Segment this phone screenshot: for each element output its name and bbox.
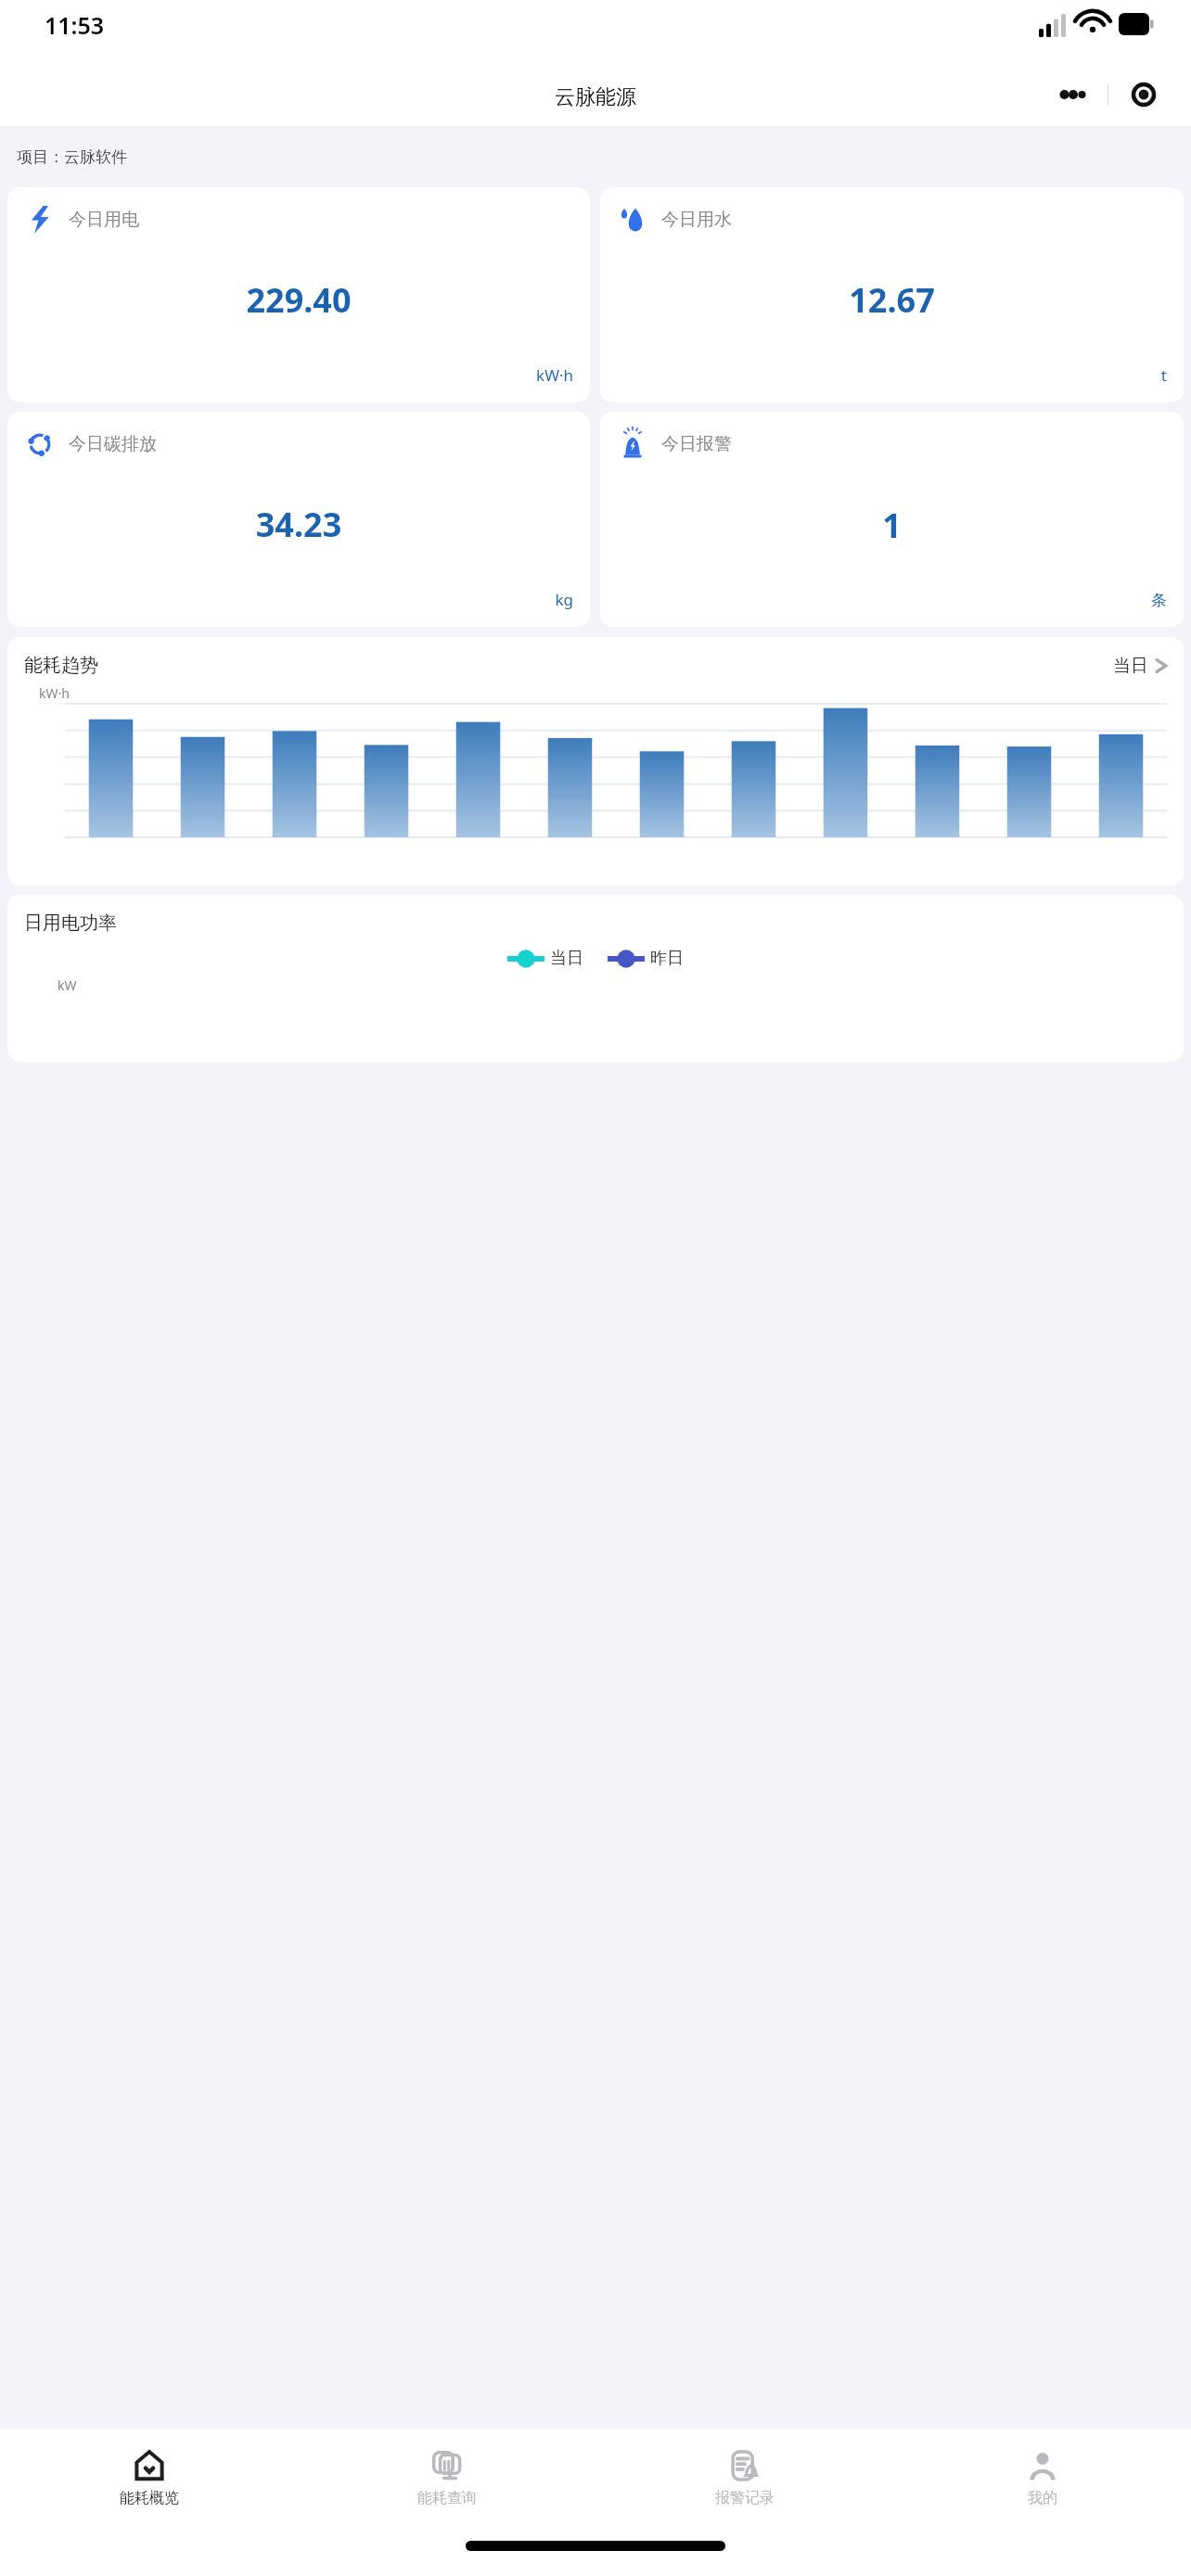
button[interactable]: 能耗查询 bbox=[298, 2429, 595, 2526]
staticText: 项目：云脉软件 bbox=[17, 147, 127, 167]
staticText: 1 bbox=[617, 503, 1167, 548]
staticText: 我的 bbox=[1028, 2489, 1057, 2507]
staticText: kW bbox=[58, 976, 77, 994]
staticText: 当日 bbox=[550, 948, 583, 969]
button[interactable]: Close bbox=[1108, 73, 1178, 116]
staticText: 12.67 bbox=[617, 277, 1167, 323]
staticText: 229.40 bbox=[24, 277, 573, 323]
button[interactable]: 我的 bbox=[893, 2429, 1191, 2526]
button[interactable]: More bbox=[1039, 73, 1108, 116]
staticText: 日用电功率 bbox=[24, 912, 117, 935]
staticText: t bbox=[617, 364, 1167, 386]
button[interactable]: 能耗趋势 bbox=[7, 637, 1184, 886]
button[interactable]: 今日用电 bbox=[7, 187, 590, 402]
button[interactable]: 当日 bbox=[1113, 655, 1167, 677]
staticText: 今日报警 bbox=[661, 433, 732, 455]
staticText: 能耗趋势 bbox=[24, 654, 98, 677]
button[interactable]: 今日报警 bbox=[600, 412, 1184, 627]
button[interactable]: 报警记录 bbox=[595, 2429, 893, 2526]
staticText: 报警记录 bbox=[715, 2489, 775, 2507]
button[interactable]: 能耗概览 bbox=[0, 2429, 298, 2526]
staticText: 当日 bbox=[1113, 655, 1148, 677]
button[interactable]: 日用电功率 bbox=[7, 895, 1184, 1062]
staticText: 今日碳排放 bbox=[69, 433, 157, 455]
staticText: 11:53 bbox=[45, 9, 105, 41]
button[interactable]: More bbox=[1039, 73, 1178, 116]
staticText: 34.23 bbox=[24, 502, 573, 547]
staticText: 能耗查询 bbox=[417, 2489, 477, 2507]
staticText: 能耗概览 bbox=[120, 2489, 179, 2507]
staticText: 昨日 bbox=[650, 948, 684, 969]
staticText: 云脉能源 bbox=[555, 84, 636, 110]
button[interactable]: 今日碳排放 bbox=[7, 412, 590, 627]
staticText: 条 bbox=[617, 591, 1167, 610]
staticText: 今日用水 bbox=[661, 209, 732, 231]
staticText: 今日用电 bbox=[69, 209, 139, 231]
staticText: kg bbox=[24, 589, 573, 610]
staticText: kW·h bbox=[24, 364, 573, 386]
button[interactable]: 今日用水 bbox=[600, 187, 1184, 402]
staticText: kW·h bbox=[39, 684, 70, 702]
